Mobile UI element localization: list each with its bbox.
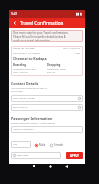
- staticText: APPLY: [70, 154, 79, 158]
- staticText: One more step for your Travel confirmati…: [13, 31, 69, 35]
- staticText: this contact: [11, 90, 23, 93]
- staticText: verify your travel information.: [13, 39, 51, 41]
- staticText: Koyambedu Omni Bus: [13, 68, 36, 71]
- button[interactable]: APPLY: [66, 152, 83, 159]
- button[interactable]: Recent apps: [29, 161, 39, 171]
- staticText: 5:00 AM: [47, 71, 56, 74]
- staticText: 1 seat: [74, 52, 81, 55]
- staticText: TICKET NO : 5172389: [13, 47, 35, 50]
- button[interactable]: Male: [35, 142, 46, 148]
- staticText: Mon, 5 Aug 2019: [63, 47, 81, 50]
- staticText: Age: [13, 143, 17, 146]
- button[interactable]: Female: [50, 142, 64, 148]
- staticText: Primary Passenger Details | Upper Sleepe…: [11, 122, 56, 125]
- staticText: 9:41: [11, 12, 18, 16]
- staticText: ▮▮ ▮: [76, 12, 83, 16]
- staticText: SRM TRAVELS A/C Sleeper: [13, 52, 40, 55]
- staticText: Male: [39, 143, 46, 147]
- staticText: Your booking details will be sent to: [11, 87, 47, 90]
- staticText: Kadapa Bus Stand: [47, 68, 66, 71]
- staticText: Enter Email ID: [13, 106, 28, 109]
- staticText: Contact Details: [11, 81, 39, 86]
- staticText: Enter Mobile Number: [13, 97, 36, 100]
- staticText: Travel Confirmation: [20, 20, 64, 26]
- button[interactable]: Offer Code: [11, 152, 61, 159]
- staticText: Name of Passenger 1: [13, 128, 35, 131]
- button[interactable]: Age: [11, 141, 31, 148]
- staticText: Passenger Information: [11, 116, 53, 121]
- staticText: Dropping: [47, 63, 61, 67]
- button[interactable]: Name of Passenger 1: [11, 126, 83, 133]
- button[interactable]: Enter Email ID: [11, 104, 83, 111]
- button[interactable]: Home: [45, 161, 55, 171]
- button[interactable]: Enter Mobile Number: [11, 95, 83, 102]
- staticText: Female: [54, 143, 64, 147]
- staticText: Please fill out the traveller details be…: [13, 35, 66, 39]
- staticText: Chennai to Kadapa: [13, 56, 47, 61]
- button[interactable]: Back: [61, 161, 71, 171]
- staticText: Offer Code: [17, 154, 29, 157]
- staticText: Boarding: [13, 63, 27, 67]
- button[interactable]: Back: [9, 18, 20, 28]
- staticText: Stop - 9:30 PM: [13, 71, 28, 74]
